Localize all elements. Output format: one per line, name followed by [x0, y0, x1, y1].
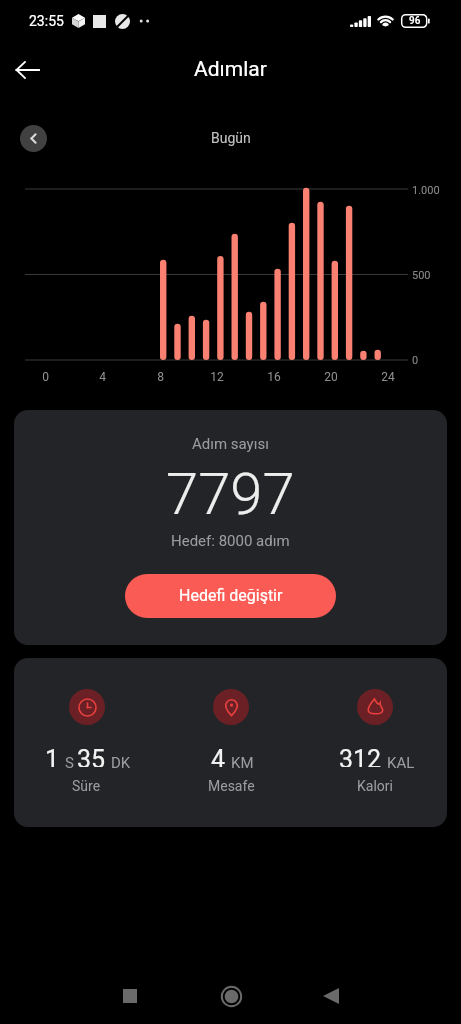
staticText: 4 [99, 370, 106, 384]
button[interactable]: Recent apps [110, 976, 150, 1016]
staticText: 4 [211, 745, 226, 767]
staticText: 312 [339, 745, 382, 767]
staticText: 7797 [166, 460, 295, 528]
staticText: Kalori [357, 778, 393, 794]
staticText: 16 [267, 370, 281, 384]
staticText: 0 [42, 370, 49, 384]
staticText: KAL [387, 754, 415, 772]
button[interactable]: Home [211, 976, 251, 1016]
staticText: 24 [381, 370, 395, 384]
staticText: 96 [409, 15, 421, 27]
staticText: 0 [412, 354, 419, 367]
staticText: 20 [324, 370, 338, 384]
button[interactable]: Back [311, 976, 351, 1016]
staticText: Adım sayısı [192, 435, 269, 453]
staticText: 8 [157, 370, 164, 384]
button[interactable]: Previous day [20, 125, 47, 152]
button[interactable]: Hedefi değiştir [125, 574, 336, 618]
staticText: Süre [72, 778, 101, 794]
staticText: Hedefi değiştir [179, 586, 283, 605]
staticText: 12 [210, 370, 224, 384]
staticText: Bugün [211, 130, 251, 146]
staticText: Hedef: 8000 adım [171, 532, 290, 550]
staticText: 23:55 [29, 13, 64, 29]
staticText: KM [231, 754, 254, 772]
staticText: DK [111, 754, 131, 772]
staticText: 1 [45, 745, 60, 767]
staticText: Mesafe [208, 778, 255, 794]
staticText: 500 [412, 269, 431, 282]
button[interactable]: Back [5, 48, 49, 92]
staticText: Adımlar [194, 57, 267, 82]
staticText: 1.000 [412, 184, 440, 197]
staticText: S [65, 754, 74, 772]
staticText: 35 [77, 745, 106, 767]
